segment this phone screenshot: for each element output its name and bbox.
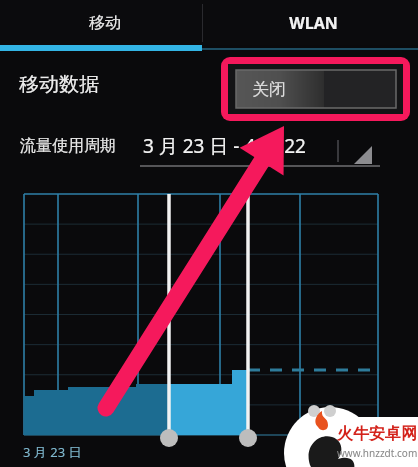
staticText: 3 月 23 日 (23, 443, 82, 461)
staticText: 3 月 23 日 - 4 月 22 (143, 133, 306, 159)
staticText: 移动数据 (19, 72, 99, 97)
staticText: 关闭 (252, 79, 286, 100)
staticText: 流量使用周期 (20, 136, 116, 156)
button[interactable]: Mobile data off toggle (236, 70, 396, 108)
button[interactable]: Change data usage cycle (140, 128, 380, 168)
staticText: www.hnzzdt.com (337, 446, 418, 460)
staticText: WLAN (289, 12, 338, 34)
staticText: 火牛安卓网 (337, 424, 417, 444)
button[interactable]: 移动 (0, 0, 209, 45)
button[interactable]: Data usage chart (0, 180, 418, 450)
staticText: 移动 (89, 13, 121, 33)
button[interactable]: WLAN (209, 0, 418, 45)
